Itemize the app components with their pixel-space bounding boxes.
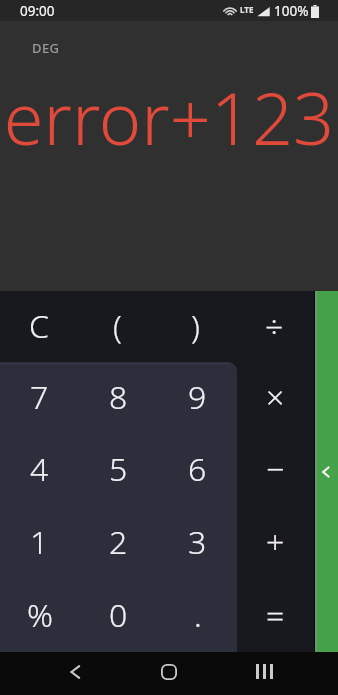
staticText: LTE — [240, 4, 254, 15]
button[interactable]: Recent apps — [241, 650, 287, 693]
staticText: 1 — [30, 520, 49, 564]
button[interactable]: 8 — [79, 362, 158, 434]
staticText: − — [266, 447, 285, 491]
button[interactable]: 5 — [79, 434, 158, 506]
button[interactable]: Open history panel — [314, 291, 338, 652]
button[interactable]: × — [237, 362, 314, 434]
staticText: error+123 — [0, 68, 338, 166]
button[interactable]: 9 — [158, 362, 237, 434]
staticText: 09:00 — [20, 2, 55, 20]
staticText: ( — [113, 304, 122, 348]
staticText: C — [29, 304, 49, 348]
staticText: 7 — [30, 375, 49, 419]
staticText: 3 — [188, 520, 207, 564]
button[interactable]: 7 — [0, 362, 79, 434]
staticText: 5 — [109, 447, 128, 491]
button[interactable]: ) — [156, 291, 235, 362]
staticText: 9 — [188, 375, 207, 419]
button[interactable]: . — [158, 579, 237, 652]
staticText: = — [266, 593, 285, 637]
staticText: 4 — [30, 447, 49, 491]
button[interactable]: + — [237, 506, 314, 579]
button[interactable]: % — [0, 579, 79, 652]
button[interactable]: 0 — [79, 579, 158, 652]
button[interactable]: 1 — [0, 506, 79, 579]
staticText: DEG — [32, 39, 60, 57]
button[interactable]: = — [237, 579, 314, 652]
button[interactable]: 3 — [158, 506, 237, 579]
staticText: . — [194, 593, 202, 637]
button[interactable]: Home — [146, 650, 192, 693]
button[interactable]: ( — [78, 291, 156, 362]
button[interactable]: − — [237, 434, 314, 506]
staticText: 6 — [188, 447, 207, 491]
button[interactable]: Back — [52, 650, 98, 693]
staticText: 2 — [109, 520, 128, 564]
button[interactable]: ÷ — [235, 291, 314, 362]
staticText: ÷ — [265, 304, 284, 348]
staticText: ) — [191, 304, 200, 348]
button[interactable]: 6 — [158, 434, 237, 506]
button[interactable]: 4 — [0, 434, 79, 506]
staticText: 8 — [109, 375, 128, 419]
staticText: % — [27, 593, 53, 637]
staticText: 0 — [109, 593, 128, 637]
staticText: + — [266, 520, 285, 564]
staticText: 100% — [274, 2, 309, 20]
staticText: × — [266, 375, 285, 419]
button[interactable]: 2 — [79, 506, 158, 579]
button[interactable]: C — [0, 291, 78, 362]
